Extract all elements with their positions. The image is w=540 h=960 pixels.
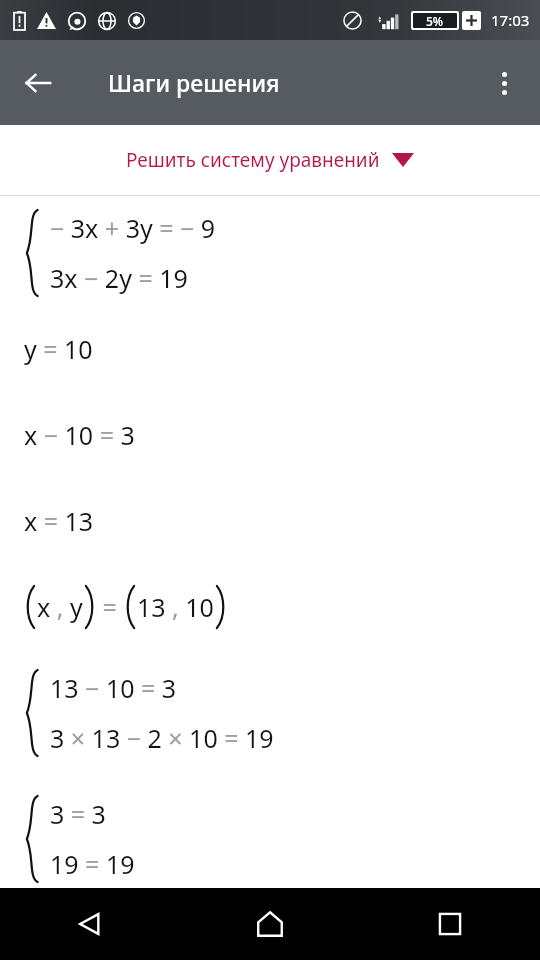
button[interactable]: Home	[180, 888, 360, 960]
staticText: y = 10	[24, 332, 93, 366]
button[interactable]: Back	[10, 55, 66, 111]
staticText: 3x − 2y = 19	[50, 261, 188, 295]
button[interactable]: Back	[0, 888, 180, 960]
button[interactable]: Решить систему уравнений	[120, 141, 420, 179]
staticText: 3 × 13 − 2 × 10 = 19	[50, 721, 274, 755]
staticText: 5%	[426, 13, 444, 28]
button[interactable]: More options	[476, 55, 532, 111]
staticText: 19 = 19	[50, 847, 135, 881]
staticText: − 3x + 3y = − 9	[50, 211, 216, 245]
button[interactable]: Recent apps	[360, 888, 540, 960]
staticText: Шаги решения	[108, 67, 280, 98]
staticText: =	[96, 590, 124, 624]
staticText: x = 13	[24, 504, 94, 538]
staticText: x − 10 = 3	[24, 418, 135, 452]
staticText: x , y	[37, 590, 83, 624]
staticText: 3 = 3	[50, 797, 106, 831]
staticText: 17:03	[491, 10, 530, 30]
staticText: Решить систему уравнений	[126, 147, 380, 173]
staticText: 13 − 10 = 3	[50, 671, 177, 705]
staticText: 13 , 10	[137, 590, 214, 624]
